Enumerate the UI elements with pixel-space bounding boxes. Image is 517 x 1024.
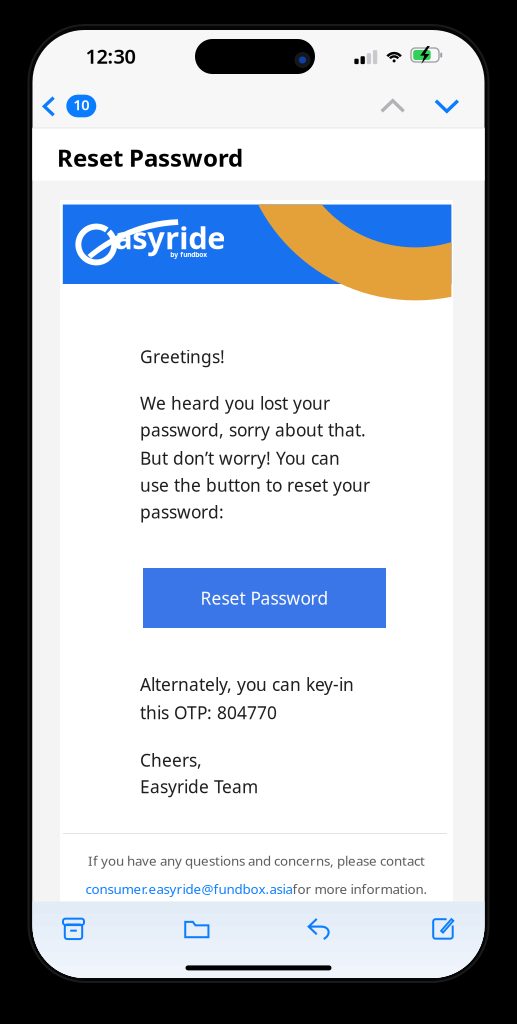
button[interactable]: Move to folder	[175, 909, 219, 949]
staticText: Easyride Team	[140, 775, 258, 798]
button[interactable]: Previous message	[367, 84, 419, 128]
staticText: for more information.	[292, 880, 427, 898]
staticText: by fundbox	[170, 250, 207, 259]
staticText: Cheers,	[140, 749, 202, 772]
button[interactable]: 10	[32, 84, 152, 128]
staticText: Reset Password	[57, 142, 243, 173]
button[interactable]: Next message	[421, 84, 473, 128]
staticText: Alternately, you can key-in	[140, 673, 354, 696]
staticText: this OTP: 804770	[140, 701, 277, 724]
staticText: asyride	[114, 217, 225, 258]
staticText: 10	[73, 95, 89, 114]
button[interactable]: Compose	[421, 909, 465, 949]
button[interactable]: Reset Password	[143, 568, 386, 628]
staticText: Reset Password	[200, 586, 328, 609]
staticText: password, sorry about that.	[140, 418, 366, 441]
staticText: password:	[140, 500, 224, 523]
staticText: 12:30	[85, 43, 135, 69]
staticText: Greetings!	[140, 345, 225, 368]
staticText: use the button to reset your	[140, 474, 370, 497]
button[interactable]: Reply	[298, 909, 342, 949]
button[interactable]: consumer.easyride@fundbox.asia	[85, 880, 292, 898]
staticText: We heard you lost your	[140, 392, 330, 415]
staticText: If you have any questions and concerns, …	[88, 852, 425, 869]
staticText: But don’t worry! You can	[140, 446, 340, 469]
button[interactable]: Archive	[51, 909, 95, 949]
staticText: consumer.easyride@fundbox.asia	[85, 880, 292, 898]
